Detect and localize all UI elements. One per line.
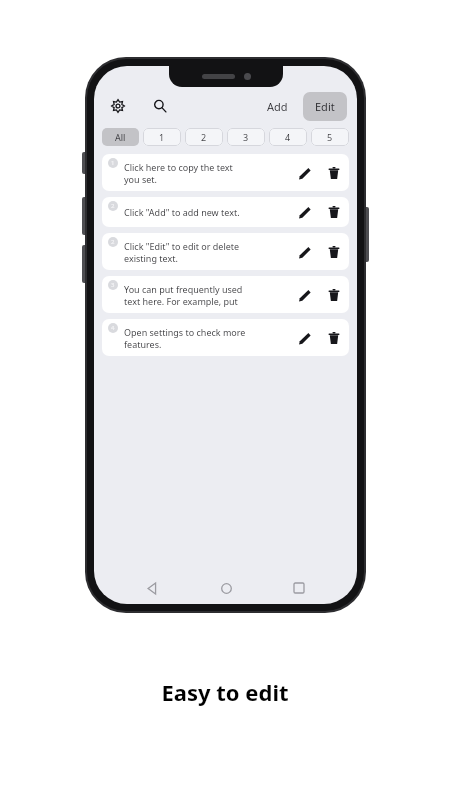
button[interactable]: 5	[311, 128, 349, 146]
staticText: 5	[327, 131, 333, 143]
staticText: 1	[111, 159, 115, 167]
button[interactable]: 4	[269, 128, 307, 146]
button[interactable]: Delete note	[319, 280, 349, 310]
button[interactable]: 1	[102, 154, 349, 191]
button[interactable]: 4	[102, 319, 349, 356]
button[interactable]: All	[102, 128, 139, 146]
staticText: you set.	[124, 173, 157, 185]
staticText: 1	[159, 131, 165, 143]
staticText: existing text.	[124, 252, 178, 264]
staticText: 2	[111, 238, 115, 246]
button[interactable]: 3	[102, 276, 349, 313]
button[interactable]: Edit note	[289, 197, 319, 227]
staticText: You can put frequently used	[124, 283, 243, 295]
button[interactable]: Settings	[104, 92, 132, 120]
staticText: 3	[111, 281, 115, 289]
button[interactable]: Delete note	[319, 158, 349, 188]
staticText: Edit	[315, 99, 335, 114]
button[interactable]: 3	[227, 128, 265, 146]
button[interactable]: 1	[143, 128, 181, 146]
button[interactable]: Delete note	[319, 237, 349, 267]
button[interactable]: Recent apps	[284, 573, 314, 603]
staticText: Click "Edit" to edit or delete	[124, 240, 240, 252]
button[interactable]: Edit	[303, 92, 347, 121]
button[interactable]: Edit note	[289, 280, 319, 310]
button[interactable]: Search	[146, 92, 174, 120]
staticText: 4	[111, 324, 115, 332]
staticText: Easy to edit	[161, 677, 289, 707]
button[interactable]: Add	[258, 93, 297, 120]
staticText: Click "Add" to add new text.	[124, 206, 240, 218]
button[interactable]: Edit note	[289, 237, 319, 267]
button[interactable]: Home	[211, 573, 241, 603]
button[interactable]: Delete note	[319, 197, 349, 227]
button[interactable]: Back	[137, 573, 167, 603]
staticText: features.	[124, 338, 162, 350]
button[interactable]: 2	[102, 233, 349, 270]
staticText: text here. For example, put	[124, 295, 238, 307]
staticText: Click here to copy the text	[124, 161, 233, 173]
staticText: 2	[201, 131, 207, 143]
staticText: All	[115, 131, 126, 143]
staticText: Add	[267, 99, 288, 114]
staticText: 3	[243, 131, 249, 143]
button[interactable]: Edit note	[289, 158, 319, 188]
button[interactable]: 2	[102, 197, 349, 227]
button[interactable]: 2	[185, 128, 223, 146]
staticText: Open settings to check more	[124, 326, 246, 338]
button[interactable]: Delete note	[319, 323, 349, 353]
staticText: 2	[111, 202, 115, 210]
staticText: 4	[285, 131, 291, 143]
button[interactable]: Edit note	[289, 323, 319, 353]
